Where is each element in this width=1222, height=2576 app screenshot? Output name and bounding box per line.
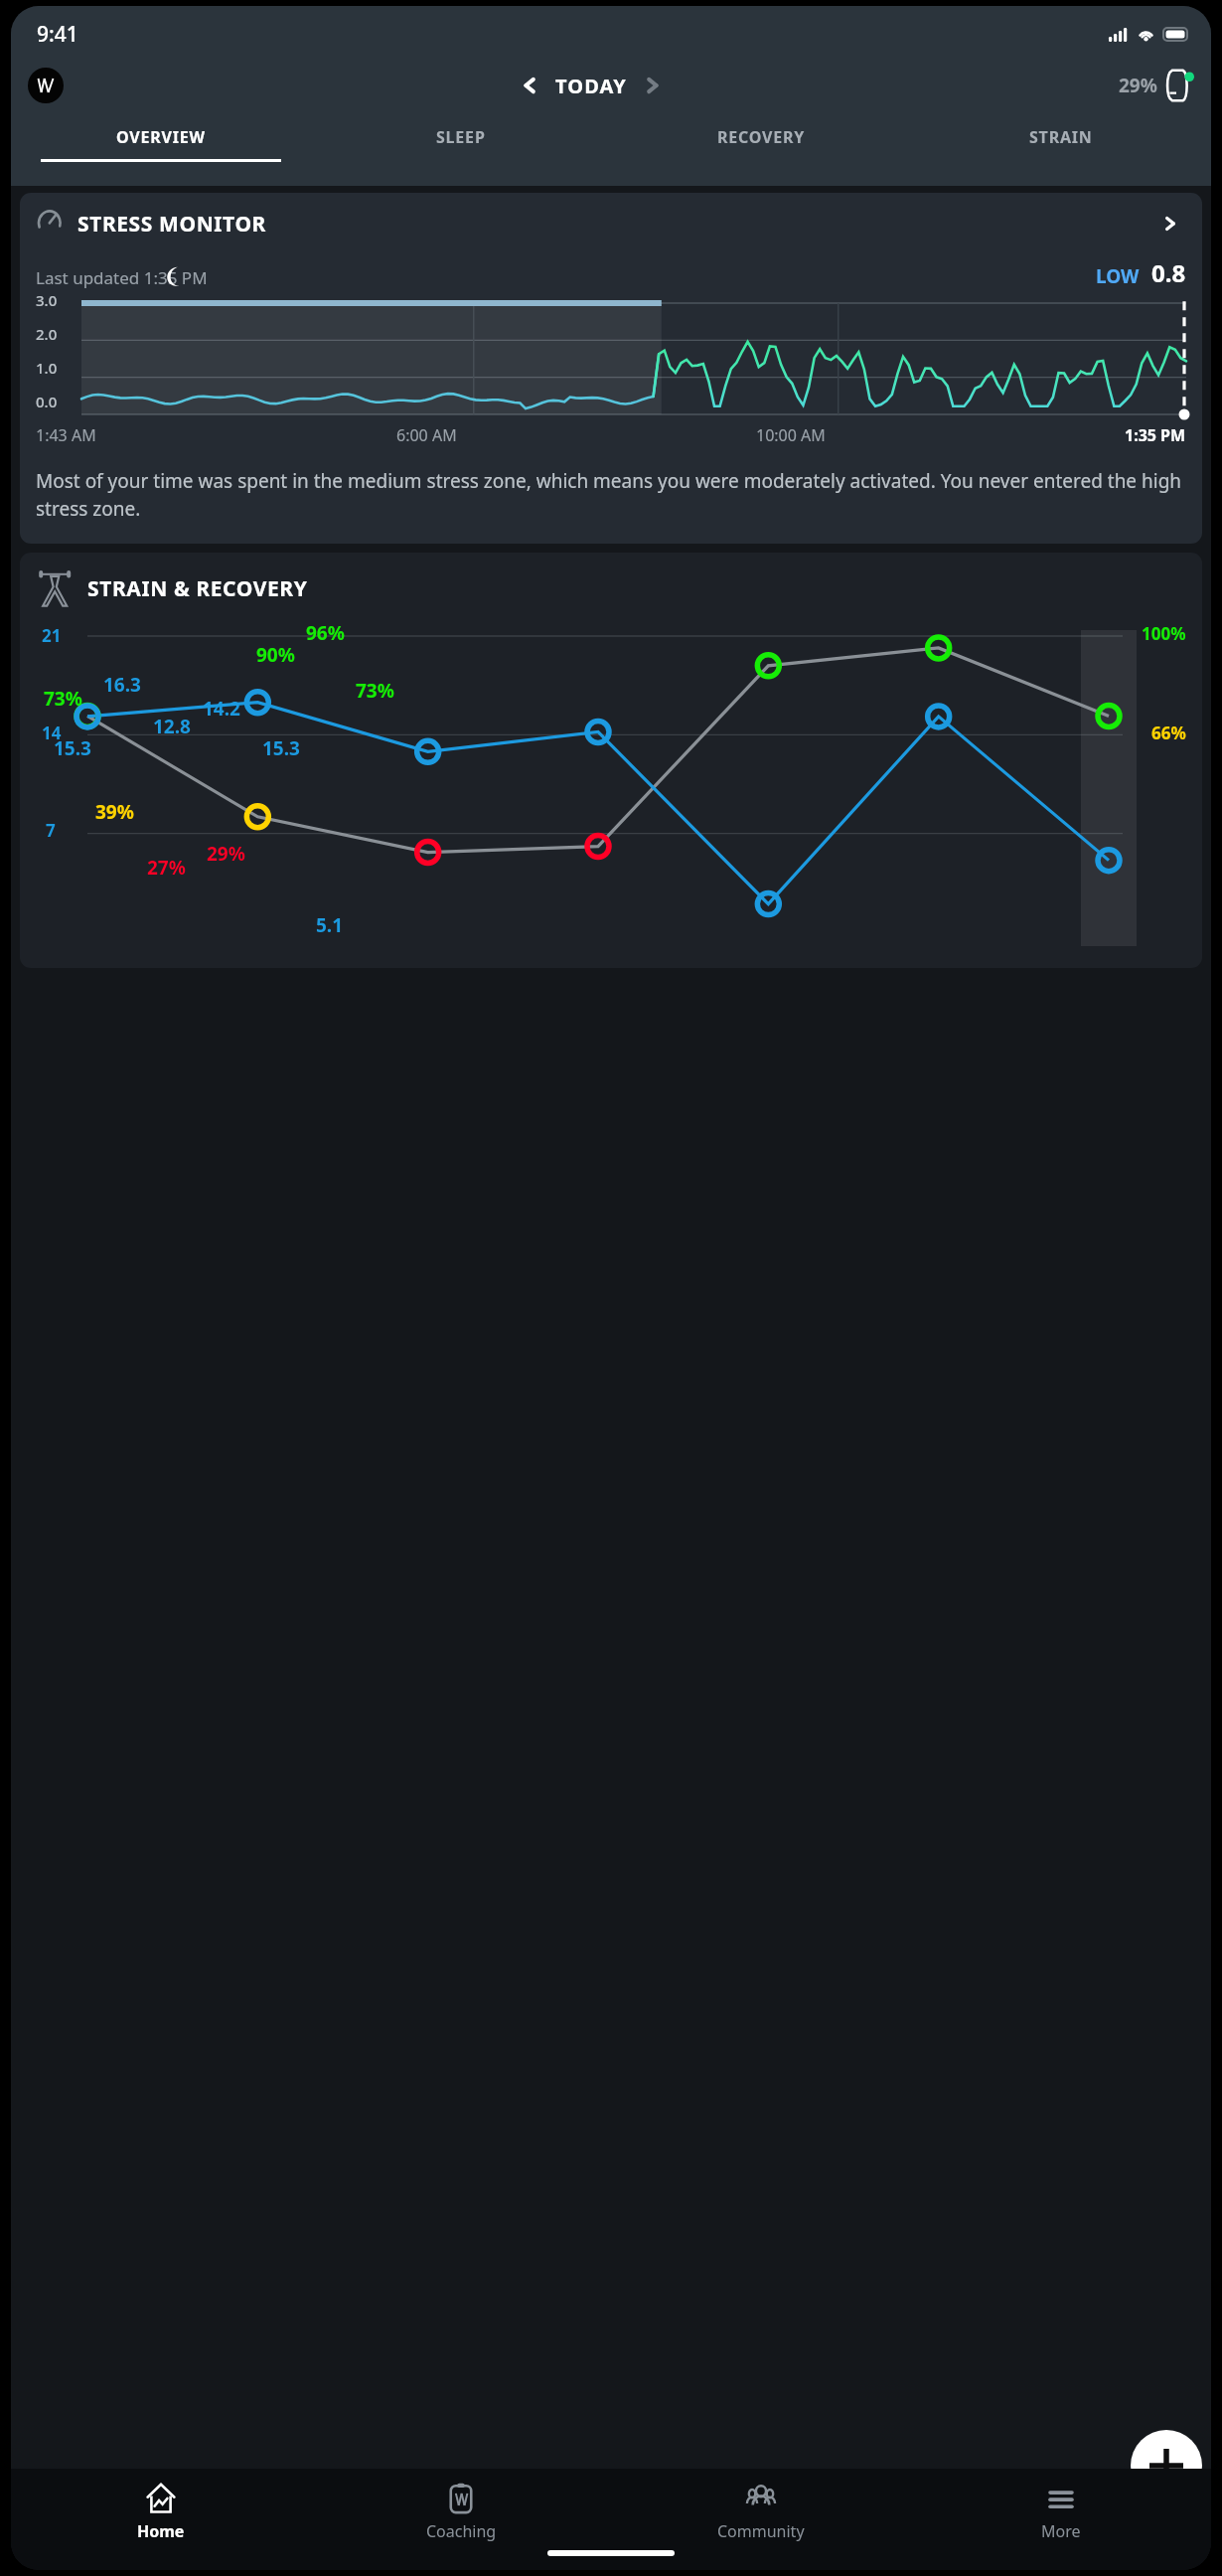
button[interactable]: STRAIN & RECOVERY [20, 553, 1202, 968]
staticText: 100% [1142, 622, 1186, 645]
staticText: Most of your time was spent in the mediu… [36, 468, 1186, 522]
staticText: 16.3 [103, 672, 141, 698]
staticText: 0.8 [1151, 256, 1186, 289]
button[interactable]: RECOVERY [611, 126, 911, 162]
button[interactable]: Add activity [1131, 2430, 1202, 2501]
staticText: LOW [1096, 263, 1140, 289]
staticText: 21 [42, 624, 62, 647]
staticText: 39% [95, 799, 134, 825]
button[interactable]: Band battery 29% [1119, 67, 1194, 104]
staticText: 1:35 PM [1125, 424, 1186, 446]
staticText: 12.8 [153, 714, 191, 739]
button[interactable]: STRESS MONITOR [20, 193, 1202, 544]
staticText: 1:43 AM [36, 424, 96, 446]
staticText: 14 [42, 722, 62, 744]
staticText: 66% [1151, 722, 1186, 744]
staticText: 90% [256, 642, 295, 668]
button[interactable]: TODAY [555, 73, 627, 99]
button[interactable]: Next day [637, 69, 671, 102]
staticText: 15.3 [54, 735, 91, 761]
button[interactable]: Previous day [512, 69, 545, 102]
staticText: 73% [44, 686, 82, 712]
staticText: Community [717, 2520, 805, 2542]
staticText: Last updated 1:35 PM [36, 266, 208, 289]
staticText: 5.1 [316, 912, 344, 938]
staticText: OVERVIEW [116, 126, 206, 148]
staticText: STRAIN & RECOVERY [87, 574, 308, 603]
staticText: Home [137, 2520, 185, 2542]
button[interactable]: Community [611, 2483, 911, 2542]
button[interactable]: Home [11, 2483, 311, 2542]
staticText: 10:00 AM [756, 424, 826, 446]
button[interactable]: SLEEP [311, 126, 611, 162]
button[interactable]: WHOOP profile [28, 68, 64, 103]
staticText: 29% [1119, 73, 1157, 98]
button[interactable]: OVERVIEW [11, 126, 311, 162]
staticText: 73% [356, 678, 394, 704]
staticText: 14.2 [203, 696, 240, 722]
staticText: STRESS MONITOR [77, 210, 266, 239]
staticText: RECOVERY [717, 126, 806, 148]
staticText: 7 [46, 819, 56, 842]
staticText: SLEEP [436, 126, 486, 148]
staticText: 3.0 [36, 290, 58, 310]
staticText: 15.3 [262, 735, 300, 761]
button[interactable]: STRAIN [911, 126, 1211, 162]
staticText: Coaching [426, 2520, 497, 2542]
button[interactable]: Coaching [311, 2483, 611, 2542]
staticText: More [1041, 2520, 1081, 2542]
staticText: 6:00 AM [396, 424, 457, 446]
staticText: 0.0 [36, 392, 58, 411]
staticText: 96% [306, 620, 345, 646]
button[interactable]: More [911, 2483, 1211, 2542]
staticText: 2.0 [36, 324, 58, 344]
staticText: STRAIN [1029, 126, 1093, 148]
staticText: 9:41 [37, 20, 78, 49]
staticText: 29% [207, 841, 245, 867]
staticText: 1.0 [36, 358, 58, 378]
staticText: 27% [147, 855, 186, 881]
button[interactable]: Open stress monitor [1156, 209, 1186, 239]
